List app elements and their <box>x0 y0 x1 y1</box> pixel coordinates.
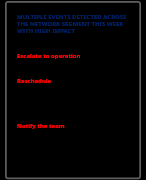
staticText: Reschedule <box>17 77 52 85</box>
staticText: MULTIPLE EVENTS DETECTED ACROSS THE NETW… <box>17 13 127 35</box>
button[interactable]: Reschedule <box>17 77 77 85</box>
staticText: Notify the team <box>17 122 65 130</box>
button[interactable]: Notify the team <box>17 122 87 130</box>
staticText: Notify the team <box>17 122 65 130</box>
staticText: MULTIPLE EVENTS DETECTED ACROSS THE NETW… <box>17 13 127 35</box>
staticText: Escalate to operation <box>17 52 81 60</box>
staticText: Reschedule <box>17 77 52 85</box>
staticText: Reschedule <box>17 77 52 85</box>
staticText: MULTIPLE EVENTS DETECTED ACROSS THE NETW… <box>17 13 127 35</box>
staticText: Reschedule <box>17 77 52 85</box>
staticText: Escalate to operation <box>17 52 81 60</box>
staticText: Escalate to operation <box>17 52 81 60</box>
staticText: Reschedule <box>17 77 52 85</box>
staticText: MULTIPLE EVENTS DETECTED ACROSS THE NETW… <box>17 13 127 35</box>
staticText: Notify the team <box>17 122 65 130</box>
staticText: Escalate to operation <box>17 52 81 60</box>
staticText: MULTIPLE EVENTS DETECTED ACROSS THE NETW… <box>17 13 127 35</box>
button[interactable]: Escalate to operation <box>17 52 107 60</box>
staticText: Escalate to operation <box>17 52 81 60</box>
staticText: Notify the team <box>17 122 65 130</box>
staticText: Notify the team <box>17 122 65 130</box>
